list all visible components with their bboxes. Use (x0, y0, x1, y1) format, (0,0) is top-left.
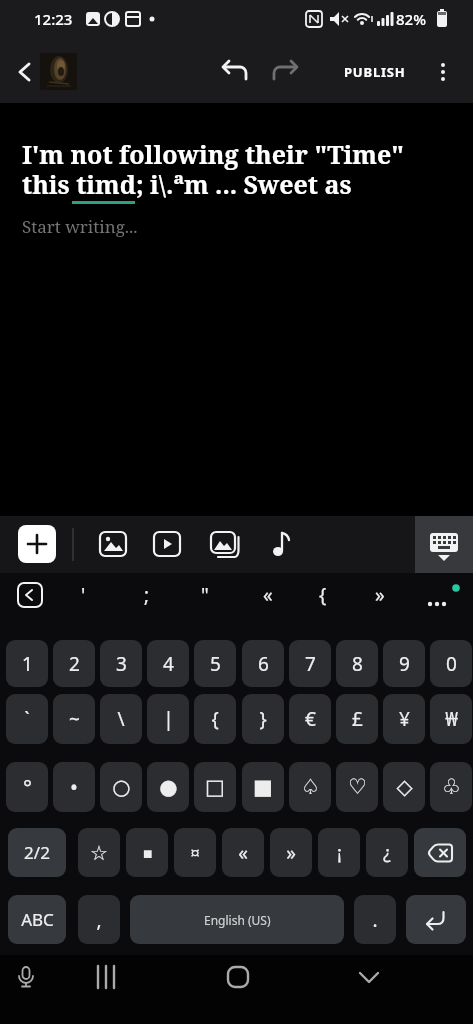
button[interactable]: ` (6, 694, 48, 744)
button[interactable]: 2 (53, 640, 95, 687)
staticText: ♧ (442, 775, 461, 799)
button[interactable]: 3 (100, 640, 142, 687)
staticText: ABC (21, 908, 54, 931)
button[interactable] (351, 959, 387, 995)
staticText: 8 (352, 651, 363, 677)
button[interactable]: 4 (147, 640, 189, 687)
button[interactable]: » (367, 579, 393, 611)
staticText: Start writing... (22, 215, 138, 238)
staticText: | (163, 706, 174, 732)
button[interactable] (14, 579, 46, 611)
staticText: ; (144, 582, 150, 608)
button[interactable]: □ (194, 762, 236, 812)
button[interactable] (8, 959, 44, 995)
button[interactable]: ¿ (366, 828, 408, 877)
staticText: « (263, 582, 273, 608)
staticText: 7 (305, 651, 316, 677)
button[interactable] (206, 526, 243, 563)
button[interactable]: ☆ (78, 828, 120, 877)
staticText: 0 (446, 651, 457, 677)
button[interactable]: € (289, 694, 331, 744)
staticText: ° (23, 773, 32, 802)
button[interactable]: 1 (6, 640, 48, 687)
staticText: • (70, 773, 78, 802)
button[interactable]: ● (147, 762, 189, 812)
button[interactable] (415, 516, 473, 573)
button[interactable]: » (270, 828, 312, 877)
button[interactable]: 7 (289, 640, 331, 687)
button[interactable] (425, 54, 461, 90)
button[interactable]: } (242, 694, 284, 744)
staticText: 82% (396, 9, 426, 29)
staticText: » (375, 582, 385, 608)
button[interactable]: \ (100, 694, 142, 744)
button[interactable]: ♡ (336, 762, 378, 812)
button[interactable]: , (78, 895, 120, 944)
button[interactable]: English (US) (130, 895, 344, 944)
staticText: { (319, 582, 327, 608)
staticText: ¤ (190, 841, 200, 864)
button[interactable]: { (194, 694, 236, 744)
staticText: ◇ (396, 775, 413, 799)
button[interactable]: ¥ (383, 694, 425, 744)
staticText: ₩ (445, 706, 458, 732)
button[interactable] (262, 526, 299, 563)
staticText: 2/2 (24, 841, 50, 864)
button[interactable] (88, 959, 124, 995)
button[interactable] (95, 526, 132, 563)
button[interactable]: ■ (242, 762, 284, 812)
button[interactable] (268, 54, 304, 90)
button[interactable]: ' (70, 579, 96, 611)
button[interactable]: ° (6, 762, 48, 812)
staticText: 6 (258, 651, 269, 677)
button[interactable]: « (255, 579, 281, 611)
button[interactable]: ; (134, 579, 160, 611)
button[interactable] (414, 828, 466, 877)
staticText: , (96, 907, 102, 933)
button[interactable]: • (53, 762, 95, 812)
button[interactable] (406, 895, 466, 944)
button[interactable]: 0 (430, 640, 472, 687)
staticText: ¿ (383, 840, 391, 865)
button[interactable]: " (192, 579, 218, 611)
button[interactable] (220, 959, 256, 995)
staticText: ~ (69, 706, 80, 732)
button[interactable]: 9 (383, 640, 425, 687)
button[interactable]: ~ (53, 694, 95, 744)
button[interactable]: ♤ (289, 762, 331, 812)
button[interactable]: ▪ (126, 828, 168, 877)
button[interactable]: 5 (194, 640, 236, 687)
button[interactable]: ¤ (174, 828, 216, 877)
button[interactable]: 8 (336, 640, 378, 687)
button[interactable]: ABC (8, 895, 66, 944)
staticText: ■ (253, 775, 273, 799)
button[interactable]: ○ (100, 762, 142, 812)
button[interactable]: PUBLISH (332, 54, 418, 90)
button[interactable]: 6 (242, 640, 284, 687)
button[interactable]: { (310, 579, 336, 611)
staticText: ○ (112, 775, 131, 799)
button[interactable]: ◇ (383, 762, 425, 812)
button[interactable]: | (147, 694, 189, 744)
button[interactable] (216, 54, 252, 90)
button[interactable]: 2/2 (8, 828, 66, 877)
button[interactable]: « (222, 828, 264, 877)
button[interactable]: ♧ (430, 762, 472, 812)
staticText: ¥ (399, 706, 410, 732)
button[interactable]: ¡ (318, 828, 360, 877)
button[interactable]: £ (336, 694, 378, 744)
staticText: € (305, 706, 316, 732)
staticText: 12:23 (34, 9, 73, 29)
button[interactable] (149, 526, 186, 563)
staticText: 4 (163, 651, 174, 677)
staticText: } (259, 706, 267, 732)
button[interactable] (420, 579, 460, 611)
button[interactable]: ₩ (430, 694, 472, 744)
button[interactable] (6, 54, 42, 90)
button[interactable] (40, 53, 77, 90)
staticText: { (211, 706, 219, 732)
staticText: 3 (116, 651, 127, 677)
button[interactable]: . (354, 895, 396, 944)
staticText: « (238, 840, 248, 866)
button[interactable] (18, 525, 56, 563)
